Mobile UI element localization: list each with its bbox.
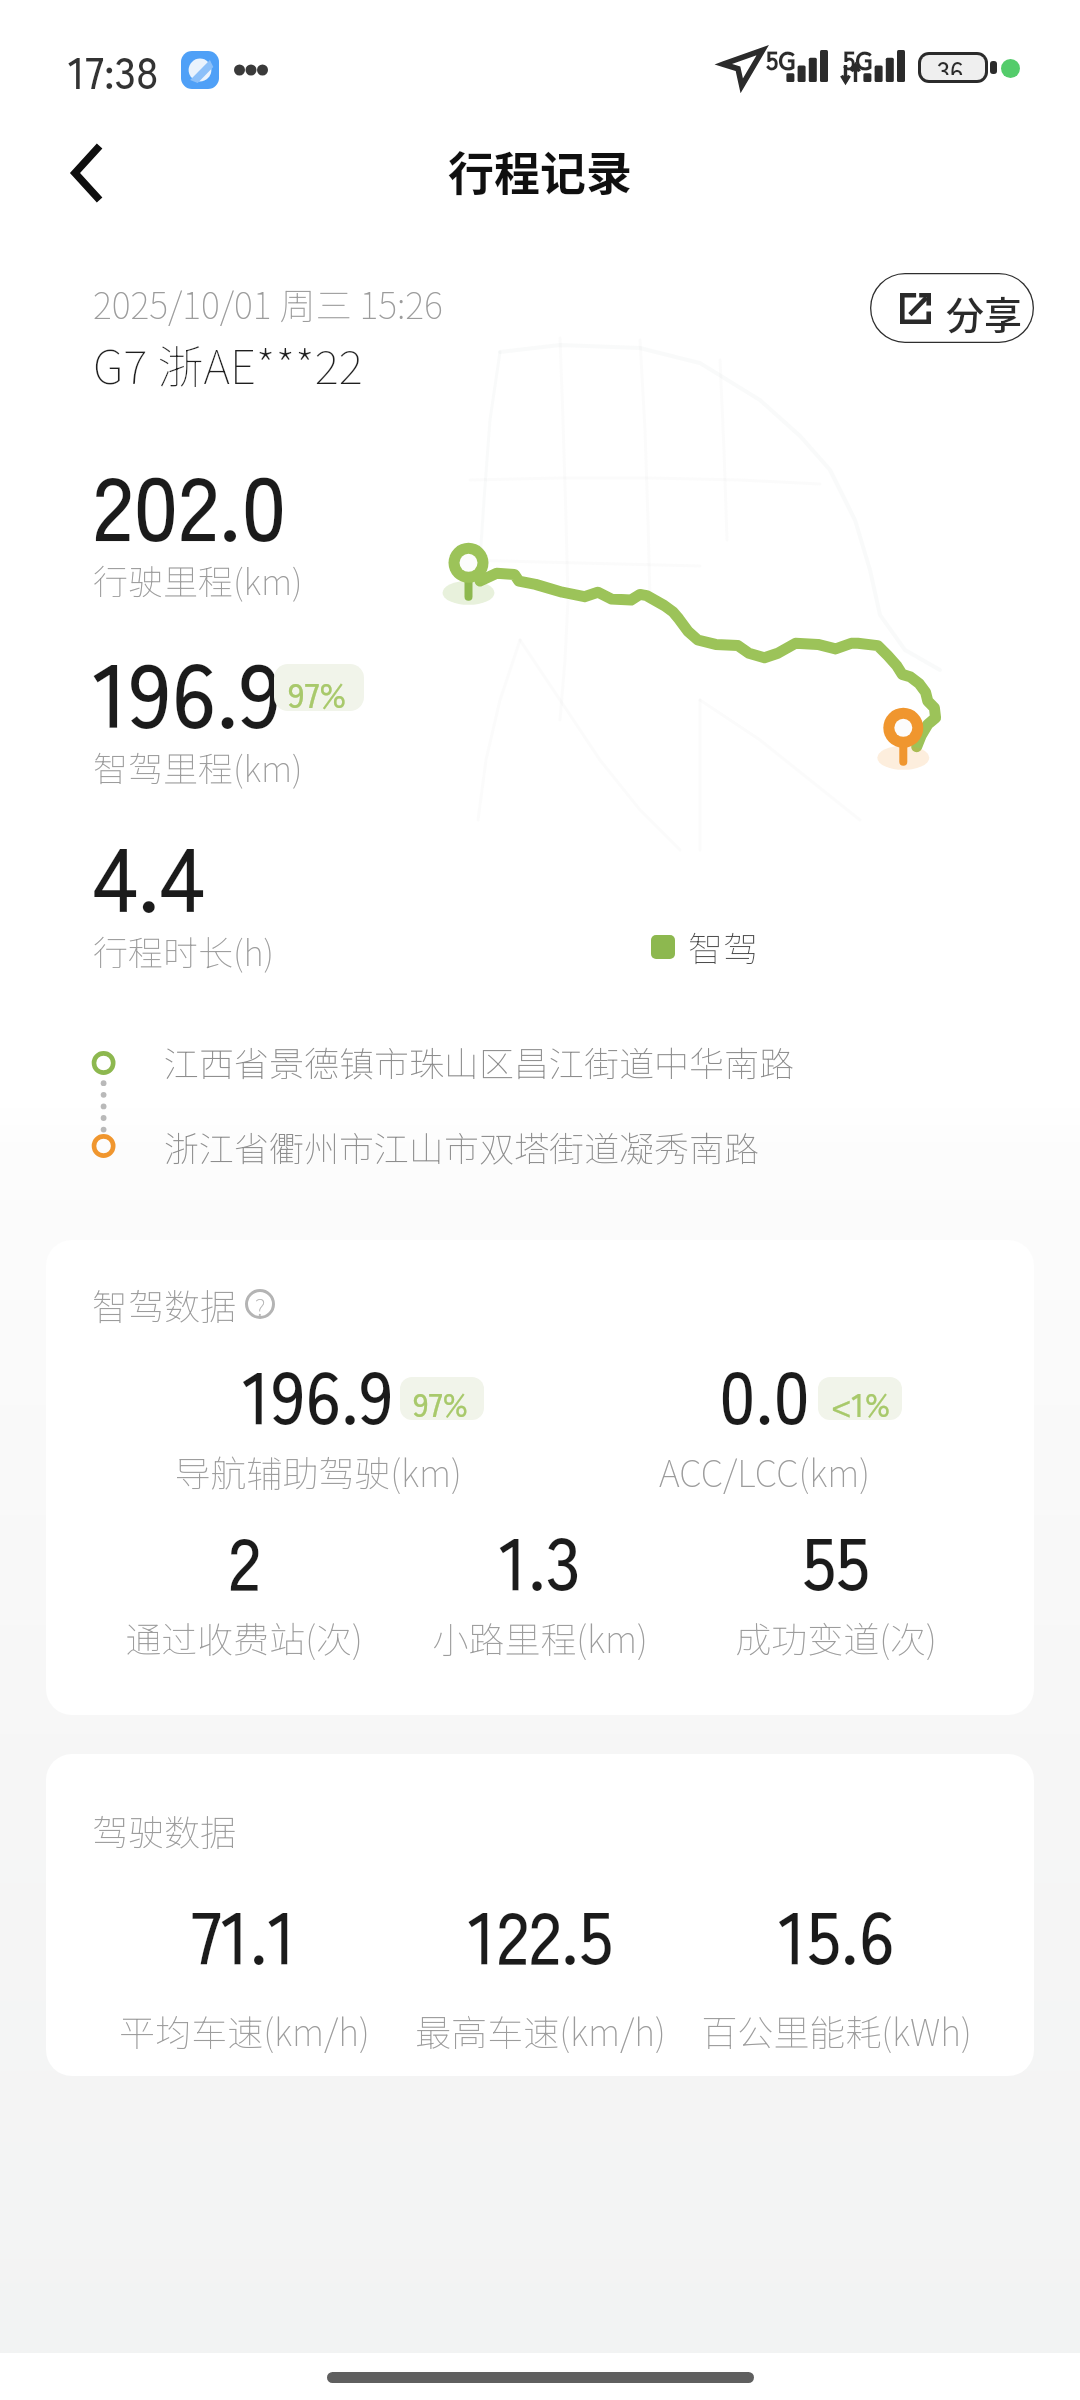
- staticText: 15.6: [778, 1880, 895, 1984]
- staticText: 2: [228, 1506, 261, 1610]
- staticText: <1%: [831, 1379, 891, 1420]
- staticText: 最高车速(km/h): [415, 2004, 666, 2056]
- staticText: 202.0: [93, 437, 287, 567]
- staticText: 5G: [766, 40, 796, 78]
- staticText: 驾驶数据: [92, 1804, 237, 1856]
- staticText: G7 浙AE***22: [93, 331, 363, 398]
- staticText: 71.1: [191, 1880, 297, 1984]
- staticText: 行驶里程(km): [93, 554, 303, 605]
- staticText: 江西省景德镇市珠山区昌江街道中华南路: [164, 1036, 795, 1087]
- staticText: 智驾: [688, 921, 759, 972]
- staticText: 55: [802, 1506, 870, 1610]
- staticText: 通过收费站(次): [125, 1611, 363, 1663]
- staticText: 2025/10/01 周三 15:26: [93, 277, 443, 329]
- staticText: 浙江省衢州市江山市双塔街道凝秀南路: [164, 1121, 760, 1172]
- staticText: 成功变道(次): [735, 1611, 937, 1663]
- staticText: 36: [937, 55, 964, 75]
- staticText: 平均车速(km/h): [119, 2004, 370, 2056]
- button[interactable]: 分享: [870, 273, 1034, 343]
- staticText: 0.0: [719, 1340, 810, 1444]
- staticText: 1.3: [499, 1506, 581, 1610]
- staticText: 分享: [946, 285, 1023, 340]
- staticText: 小路里程(km): [432, 1611, 648, 1663]
- staticText: 行程时长(h): [93, 925, 275, 976]
- staticText: 智驾数据: [92, 1278, 237, 1330]
- staticText: 4.4: [93, 808, 205, 938]
- staticText: 97%: [288, 667, 347, 711]
- staticText: ?: [255, 1288, 266, 1318]
- staticText: 196.9: [242, 1340, 394, 1444]
- staticText: 196.9: [93, 624, 282, 754]
- staticText: 百公里能耗(kWh): [701, 2004, 972, 2056]
- button[interactable]: Back: [42, 128, 132, 218]
- staticText: 5G: [843, 40, 873, 78]
- staticText: ACC/LCC(km): [659, 1445, 870, 1497]
- staticText: 导航辅助驾驶(km): [174, 1445, 462, 1497]
- staticText: 智驾里程(km): [93, 741, 303, 792]
- staticText: 行程记录: [448, 137, 632, 204]
- staticText: 122.5: [468, 1880, 613, 1984]
- staticText: 97%: [413, 1379, 468, 1420]
- staticText: 17:38: [68, 38, 159, 102]
